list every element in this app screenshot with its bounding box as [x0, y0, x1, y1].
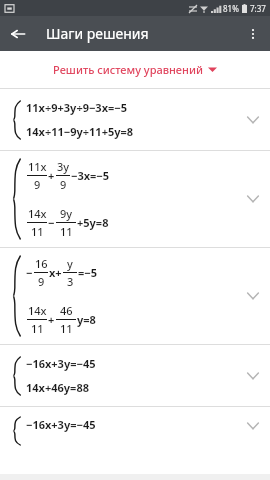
staticText: +: [48, 168, 55, 183]
staticText: 16: [35, 256, 48, 271]
staticText: −3x=−5: [71, 168, 110, 183]
staticText: −: [26, 265, 33, 280]
button[interactable]: Back: [0, 16, 35, 51]
staticText: 9: [34, 177, 41, 192]
button[interactable]: Решить систему уравнений: [0, 51, 270, 88]
staticText: 11: [31, 224, 44, 239]
button[interactable]: −: [0, 248, 270, 345]
staticText: 11: [60, 224, 73, 239]
other: Expand step: [244, 287, 262, 305]
other: Expand step: [244, 367, 262, 385]
staticText: 14x÷11−9y÷11+5y=8: [26, 124, 134, 139]
button[interactable]: More options: [235, 16, 270, 51]
staticText: +: [48, 312, 55, 327]
staticText: 7:37: [250, 3, 266, 14]
staticText: 3y: [57, 159, 70, 174]
staticText: y=8: [77, 312, 96, 327]
staticText: 9y: [60, 206, 73, 221]
staticText: −16x+3y=−45: [26, 356, 96, 371]
staticText: 11: [31, 321, 44, 336]
staticText: −16x+3y=−45: [26, 417, 96, 432]
staticText: 9: [38, 274, 45, 289]
staticText: −: [48, 215, 55, 230]
staticText: 14x: [28, 303, 47, 318]
staticText: x+: [49, 265, 62, 280]
staticText: 81%: [223, 3, 239, 14]
button[interactable]: −16x+3y=−45: [0, 345, 270, 407]
button[interactable]: 11x: [0, 151, 270, 248]
button[interactable]: 11x÷9+3y÷9−3x=−5: [0, 89, 270, 151]
staticText: Решить систему уравнений: [53, 62, 203, 77]
other: Expand step: [244, 190, 262, 208]
staticText: 46: [60, 303, 73, 318]
staticText: +5y=8: [77, 215, 109, 230]
staticText: =−5: [78, 265, 97, 280]
staticText: 9: [60, 177, 67, 192]
staticText: Шаги решения: [46, 24, 149, 43]
other: Expand step: [244, 111, 262, 129]
staticText: 11x: [28, 159, 47, 174]
staticText: 14x: [28, 206, 47, 221]
staticText: 11: [60, 321, 73, 336]
staticText: 11x÷9+3y÷9−3x=−5: [26, 100, 127, 115]
button[interactable]: −16x+3y=−45: [0, 407, 270, 445]
other: Expand step: [244, 417, 262, 435]
staticText: 14x+46y=88: [26, 380, 89, 395]
staticText: 3: [67, 274, 74, 289]
staticText: y: [67, 256, 73, 271]
